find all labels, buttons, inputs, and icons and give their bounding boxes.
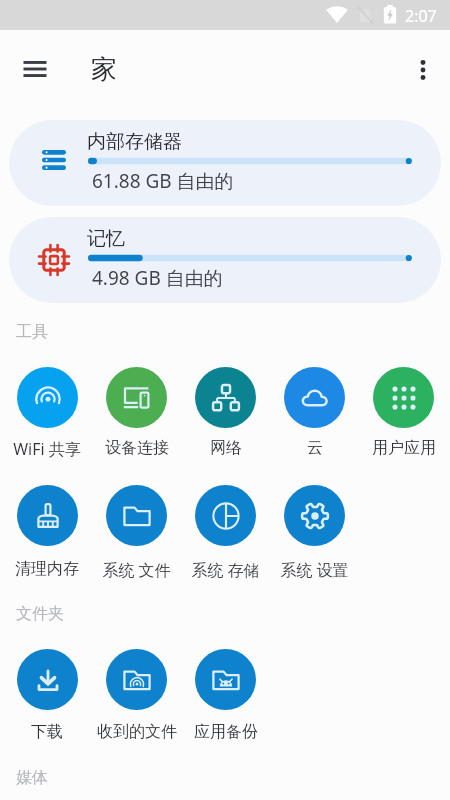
button[interactable]: 内部存储器 xyxy=(9,120,441,206)
staticText: 系统 存储 xyxy=(191,559,260,581)
staticText: 应用备份 xyxy=(194,722,258,742)
button[interactable]: 设备连接 xyxy=(92,367,181,458)
staticText: 家 xyxy=(91,53,117,86)
staticText: 用户应用 xyxy=(372,438,436,458)
staticText: 清理内存 xyxy=(15,559,79,579)
button[interactable]: 下载 xyxy=(2,649,92,742)
staticText: 61.88 GB 自由的 xyxy=(87,168,234,194)
staticText: 收到的文件 xyxy=(97,722,177,742)
button[interactable]: 应用备份 xyxy=(181,649,270,742)
button[interactable]: 清理内存 xyxy=(2,485,92,579)
button[interactable]: 收到的文件 xyxy=(92,649,181,742)
staticText: 记忆 xyxy=(87,227,125,251)
staticText: 系统 文件 xyxy=(102,559,171,581)
button[interactable]: More options xyxy=(399,46,446,93)
staticText: 设备连接 xyxy=(105,438,169,458)
button[interactable]: 系统 文件 xyxy=(92,485,181,581)
staticText: 系统 设置 xyxy=(280,559,349,581)
staticText: 文件夹 xyxy=(16,604,64,624)
staticText: 2:07 xyxy=(405,5,437,27)
button[interactable]: 用户应用 xyxy=(359,367,448,458)
button[interactable]: 记忆 xyxy=(9,217,441,303)
staticText: 工具 xyxy=(16,322,48,342)
button[interactable]: 网络 xyxy=(181,367,270,458)
button[interactable]: 云 xyxy=(270,367,359,458)
staticText: WiFi 共享 xyxy=(13,438,81,460)
staticText: 媒体 xyxy=(16,768,48,788)
staticText: 下载 xyxy=(31,722,63,742)
button[interactable]: 系统 存储 xyxy=(181,485,270,581)
staticText: 4.98 GB 自由的 xyxy=(87,265,223,291)
staticText: 网络 xyxy=(210,438,242,458)
button[interactable]: WiFi 共享 xyxy=(2,367,92,460)
button[interactable]: Menu xyxy=(11,45,59,93)
staticText: 内部存储器 xyxy=(87,130,182,154)
button[interactable]: 系统 设置 xyxy=(270,485,359,581)
staticText: 云 xyxy=(307,438,323,458)
